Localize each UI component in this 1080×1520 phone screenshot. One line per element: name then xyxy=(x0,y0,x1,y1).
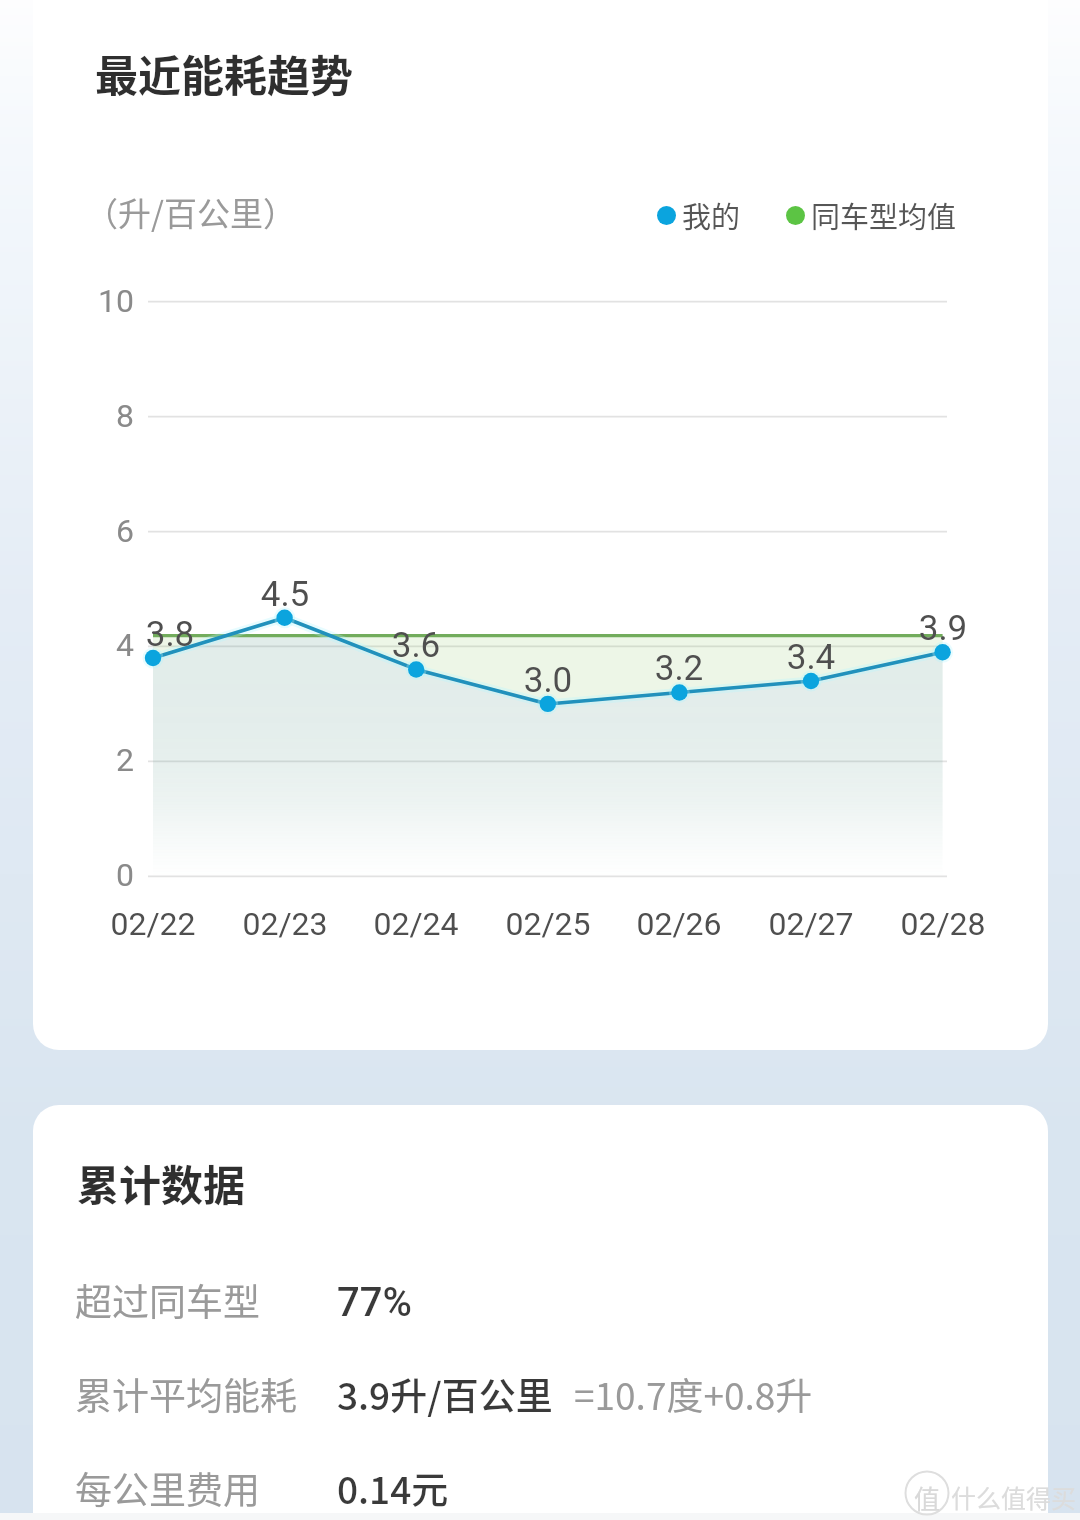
staticText: 4 xyxy=(40,626,134,664)
staticText: =10.7度+0.8升 xyxy=(574,1367,813,1421)
staticText: 4.5 xyxy=(225,574,345,615)
staticText: 6 xyxy=(40,512,134,550)
staticText: 02/23 xyxy=(215,905,355,943)
staticText: 累计平均能耗 xyxy=(75,1367,297,1421)
staticText: 3.6 xyxy=(356,625,476,666)
staticText: 02/28 xyxy=(873,905,1013,943)
staticText: 02/26 xyxy=(609,905,749,943)
staticText: 3.0 xyxy=(488,660,608,701)
staticText: 02/25 xyxy=(478,905,618,943)
staticText: 什么值得买 xyxy=(951,1479,1077,1515)
staticText: 0.14元 xyxy=(337,1461,449,1515)
staticText: 02/22 xyxy=(83,905,223,943)
staticText: 02/24 xyxy=(346,905,486,943)
staticText: 超过同车型 xyxy=(75,1273,260,1327)
staticText: 8 xyxy=(40,397,134,435)
button[interactable] xyxy=(33,0,1048,1050)
staticText: （升/百公里） xyxy=(85,188,296,236)
staticText: 77% xyxy=(337,1279,412,1326)
staticText: 3.4 xyxy=(751,637,871,678)
button[interactable] xyxy=(33,1105,1048,1520)
staticText: 0 xyxy=(40,856,134,894)
staticText: 每公里费用 xyxy=(75,1461,260,1515)
staticText: 我的 xyxy=(682,194,741,236)
staticText: 10 xyxy=(40,282,134,320)
staticText: 3.8 xyxy=(110,614,230,655)
staticText: 3.2 xyxy=(619,648,739,689)
staticText: 3.9 xyxy=(883,608,1003,649)
staticText: 最近能耗趋势 xyxy=(95,42,353,104)
staticText: 同车型均值 xyxy=(811,194,957,236)
staticText: 值 xyxy=(914,1479,941,1517)
staticText: 02/27 xyxy=(741,905,881,943)
staticText: 累计数据 xyxy=(77,1152,246,1213)
staticText: 3.9升/百公里 xyxy=(337,1367,553,1421)
staticText: 2 xyxy=(40,741,134,779)
